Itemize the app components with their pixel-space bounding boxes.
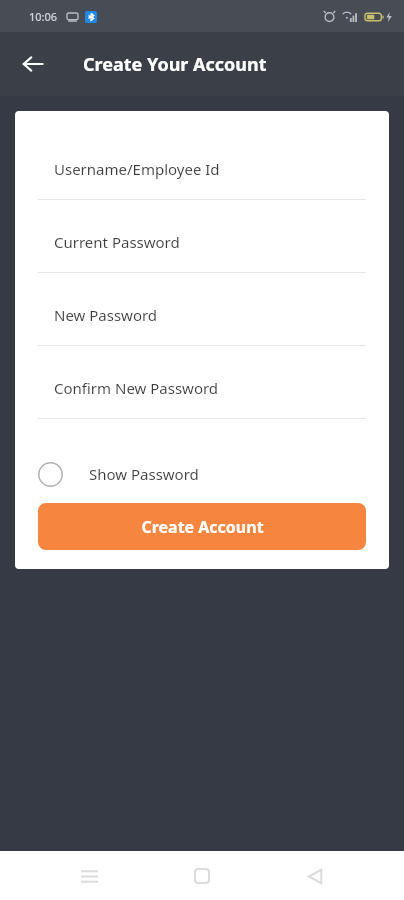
staticText: Create Account: [141, 516, 264, 538]
button[interactable]: Current Password: [15, 226, 389, 257]
staticText: Create Your Account: [83, 52, 267, 77]
staticText: Confirm New Password: [54, 378, 219, 398]
staticText: Show Password: [89, 464, 199, 484]
button[interactable]: Username/Employee Id: [15, 153, 389, 184]
button[interactable]: Recent apps: [65, 852, 113, 900]
button[interactable]: Home: [178, 852, 226, 900]
button[interactable]: Back: [13, 44, 53, 84]
staticText: New Password: [54, 305, 158, 325]
staticText: 10:06: [29, 9, 58, 24]
staticText: Username/Employee Id: [54, 159, 220, 179]
button[interactable]: Create Account: [38, 503, 366, 550]
button[interactable]: New Password: [15, 299, 389, 330]
button[interactable]: Show Password: [15, 445, 389, 503]
button[interactable]: Confirm New Password: [15, 372, 389, 403]
button[interactable]: Back: [291, 852, 339, 900]
staticText: Current Password: [54, 232, 180, 252]
